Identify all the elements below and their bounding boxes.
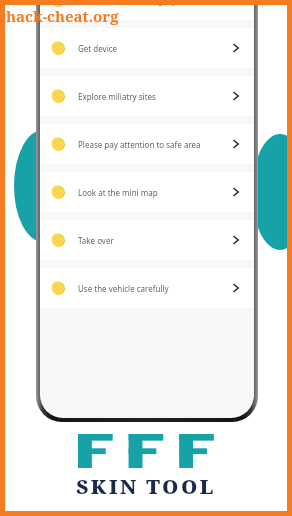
staticText: Choose the correct login point [78, 0, 228, 6]
button[interactable]: Use the vehicle carefully [40, 268, 254, 308]
staticText: Use the vehicle carefully [78, 283, 228, 294]
staticText: Explore miliatry sites [78, 91, 228, 102]
staticText: Please pay attention to safe area [78, 139, 228, 150]
other: Open Take over [228, 232, 244, 248]
button[interactable]: Get device [40, 28, 254, 68]
staticText: Get device [78, 43, 228, 54]
other: Open Use the vehicle carefully [228, 280, 244, 296]
other: Open Please pay attention to safe area [228, 136, 244, 152]
other: Open Look at the mini map [228, 184, 244, 200]
button[interactable]: Please pay attention to safe area [40, 124, 254, 164]
staticText: SKIN TOOL [76, 473, 216, 500]
staticText: Look at the mini map [78, 187, 228, 198]
staticText: hack-cheat.org [6, 6, 119, 26]
staticText: Take over [78, 235, 228, 246]
button[interactable]: Choose the correct login point [40, 0, 254, 20]
other: Open Get device [228, 40, 244, 56]
button[interactable]: Look at the mini map [40, 172, 254, 212]
button[interactable]: Take over [40, 220, 254, 260]
other: Open Choose the correct login point [228, 0, 244, 8]
button[interactable]: Explore miliatry sites [40, 76, 254, 116]
other: Open Explore miliatry sites [228, 88, 244, 104]
